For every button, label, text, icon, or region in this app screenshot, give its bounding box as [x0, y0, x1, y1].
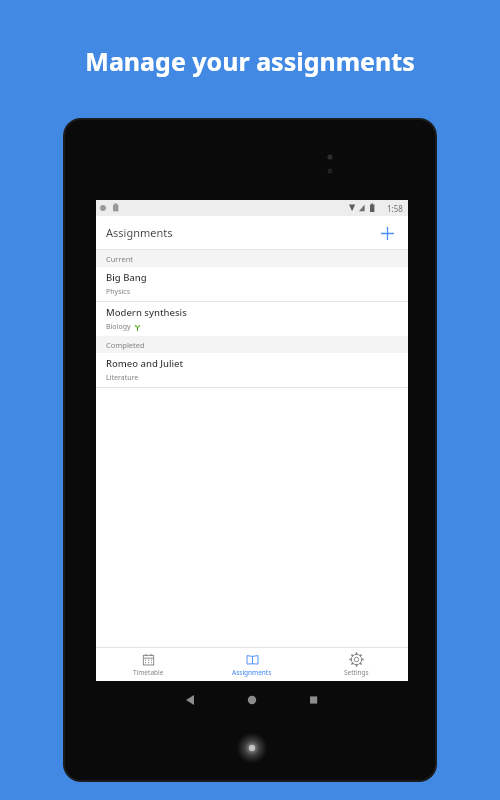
staticText: Current — [106, 254, 133, 264]
staticText: Modern synthesis — [106, 306, 187, 319]
button[interactable]: Modern synthesis — [96, 302, 408, 336]
staticText: Assignments — [106, 225, 173, 240]
staticText: Romeo and Juliet — [106, 357, 184, 370]
button[interactable]: Settings — [304, 648, 408, 681]
staticText: Assignments — [232, 668, 272, 677]
button[interactable]: Assignments — [200, 648, 304, 681]
button[interactable]: Big Bang — [96, 267, 408, 301]
staticText: Big Bang — [106, 271, 147, 284]
staticText: Biology — [106, 322, 131, 332]
button[interactable]: Timetable — [96, 648, 200, 681]
staticText: Timetable — [133, 668, 164, 677]
staticText: Manage your assignments — [85, 44, 415, 78]
staticText: Completed — [106, 340, 145, 350]
staticText: Literature — [106, 373, 139, 383]
staticText: Physics — [106, 287, 131, 297]
staticText: 1:58 — [387, 203, 403, 214]
button[interactable]: Romeo and Juliet — [96, 353, 408, 387]
staticText: Settings — [344, 668, 369, 677]
button[interactable]: Add assignment — [376, 222, 398, 244]
